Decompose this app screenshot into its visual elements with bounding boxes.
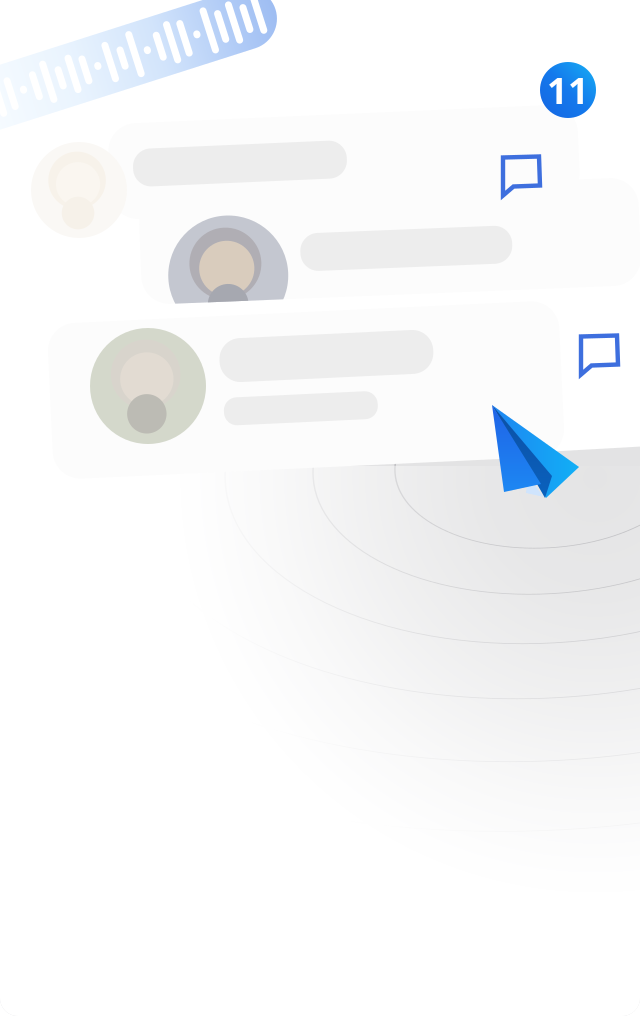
- staticText: 11: [547, 66, 589, 114]
- button[interactable]: 11 unread messages: [540, 62, 596, 118]
